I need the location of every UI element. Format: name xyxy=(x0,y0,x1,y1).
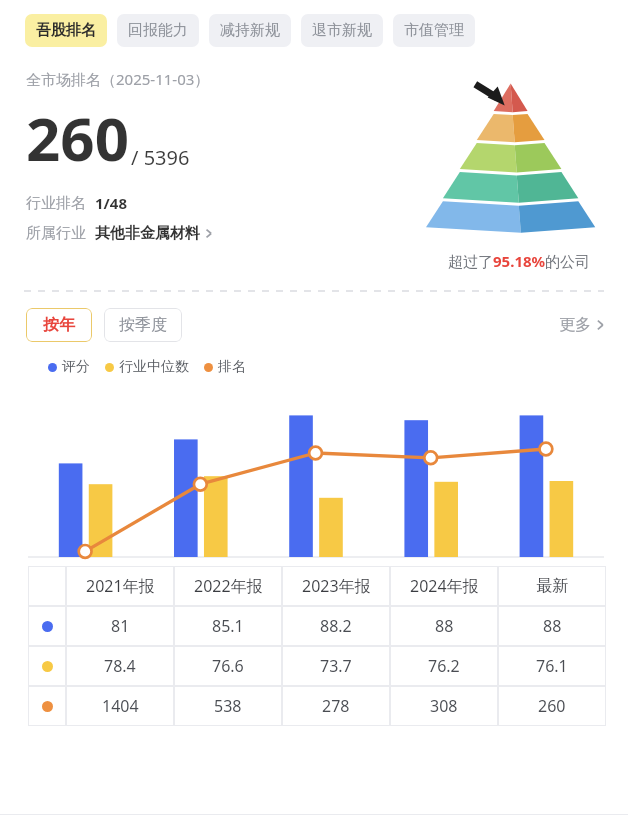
button[interactable]: 按季度 xyxy=(104,308,182,342)
staticText: 超过了95.18%的公司 xyxy=(448,251,591,271)
staticText: 88 xyxy=(435,615,454,637)
staticText: 2023年报 xyxy=(302,575,371,597)
staticText: 76.1 xyxy=(536,655,568,677)
staticText: 260 xyxy=(26,97,129,179)
staticText: 1/48 xyxy=(95,193,127,213)
staticText: 减持新规 xyxy=(220,21,280,40)
button[interactable]: 市值管理 xyxy=(393,14,475,47)
staticText: 260 xyxy=(538,695,566,717)
staticText: 评分 xyxy=(62,358,90,376)
staticText: 排名 xyxy=(218,358,246,376)
staticText: 88 xyxy=(543,615,562,637)
staticText: 其他非金属材料 xyxy=(95,224,200,243)
button[interactable]: 吾股排名 xyxy=(25,14,107,47)
staticText: 308 xyxy=(430,695,458,717)
button[interactable]: 减持新规 xyxy=(209,14,291,47)
staticText: 85.1 xyxy=(212,615,244,637)
staticText: 76.6 xyxy=(212,655,244,677)
staticText: 2021年报 xyxy=(86,575,155,597)
staticText: 76.2 xyxy=(428,655,460,677)
button[interactable]: 所属行业 xyxy=(26,224,214,243)
staticText: 行业排名 xyxy=(26,194,86,213)
button[interactable]: 按年 xyxy=(26,308,92,342)
button[interactable]: 回报能力 xyxy=(117,14,199,47)
staticText: 行业中位数 xyxy=(119,358,189,376)
staticText: 更多 xyxy=(559,315,591,335)
button[interactable]: 更多 xyxy=(559,315,606,335)
staticText: 73.7 xyxy=(320,655,352,677)
staticText: / 5396 xyxy=(131,144,190,171)
staticText: 278 xyxy=(322,695,350,717)
staticText: 市值管理 xyxy=(404,21,464,40)
staticText: 88.2 xyxy=(320,615,352,637)
staticText: 吾股排名 xyxy=(36,21,96,40)
staticText: 2022年报 xyxy=(194,575,263,597)
staticText: 最新 xyxy=(536,576,568,596)
staticText: 所属行业 xyxy=(26,224,86,243)
staticText: 81 xyxy=(111,615,130,637)
staticText: 1404 xyxy=(102,695,139,717)
staticText: 2024年报 xyxy=(410,575,479,597)
staticText: 按年 xyxy=(43,315,75,335)
staticText: 回报能力 xyxy=(128,21,188,40)
staticText: 78.4 xyxy=(104,655,136,677)
other: 排名金字塔 xyxy=(426,71,612,237)
staticText: 按季度 xyxy=(119,315,167,335)
staticText: 全市场排名（2025-11-03） xyxy=(26,69,210,89)
button[interactable]: 退市新规 xyxy=(301,14,383,47)
staticText: 538 xyxy=(214,695,242,717)
staticText: 退市新规 xyxy=(312,21,372,40)
